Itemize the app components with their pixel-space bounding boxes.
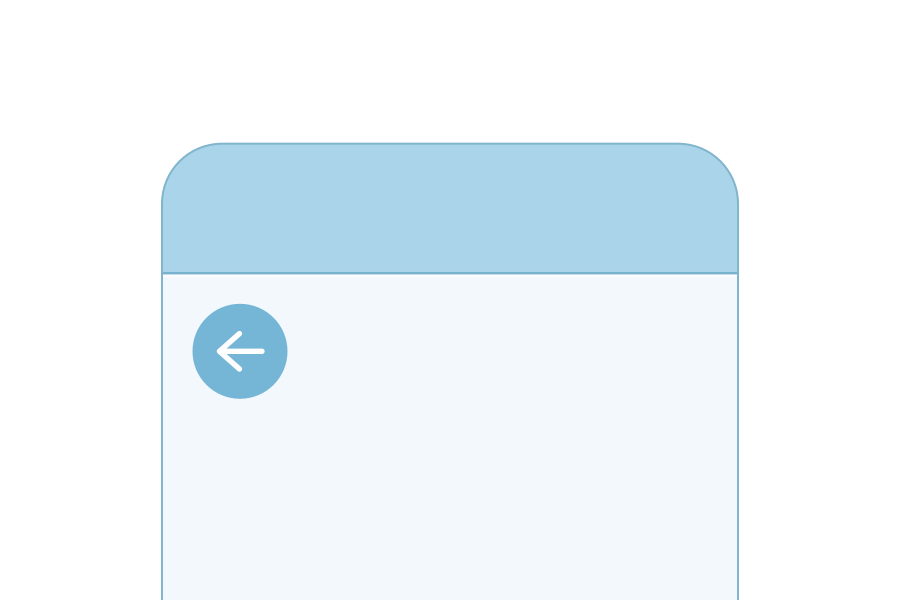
button[interactable]: Back	[192, 304, 287, 399]
